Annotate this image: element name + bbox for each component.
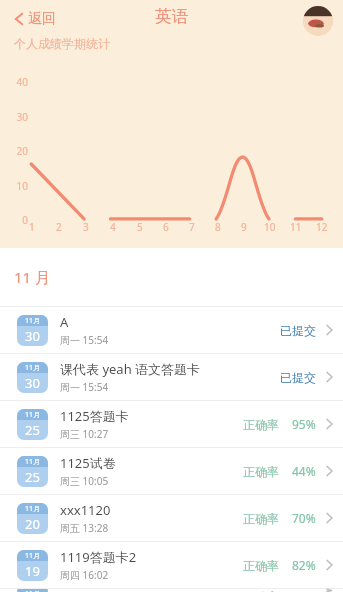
staticText: 20	[25, 515, 40, 533]
staticText: 30	[25, 327, 40, 345]
staticText: 正确率	[243, 417, 279, 432]
staticText: 6	[163, 220, 169, 234]
staticText: 英语	[155, 6, 189, 27]
staticText: 12	[316, 220, 328, 234]
staticText: 11月	[25, 457, 41, 467]
staticText: 25	[25, 468, 40, 486]
staticText: 4	[110, 220, 116, 234]
staticText: 19	[25, 562, 40, 580]
staticText: 正确率	[243, 558, 279, 573]
staticText: 11月	[25, 504, 41, 514]
staticText: 5	[137, 220, 143, 234]
staticText: xxx1120	[60, 501, 111, 519]
staticText: 周四 16:02	[60, 568, 109, 582]
staticText: 20	[10, 144, 28, 158]
staticText: 1125答题卡	[60, 407, 129, 425]
staticText: 82%	[292, 557, 316, 573]
staticText: 9	[241, 220, 247, 234]
staticText: 30	[10, 110, 28, 124]
button[interactable]: 11月	[0, 448, 343, 494]
staticText: 已提交	[280, 370, 316, 385]
staticText: 10	[264, 220, 276, 234]
button[interactable]: 返回	[10, 8, 60, 30]
staticText: 11 月	[14, 267, 51, 287]
staticText: 11月	[25, 551, 41, 561]
staticText: 11月	[25, 410, 41, 420]
staticText: 周五 13:28	[60, 521, 109, 535]
staticText: 25	[25, 421, 40, 439]
staticText: 1	[29, 220, 35, 234]
staticText: 正确率	[243, 464, 279, 479]
staticText: 1119答题卡2	[60, 548, 137, 566]
staticText: 0	[10, 213, 28, 227]
staticText: 2	[56, 220, 62, 234]
button[interactable]: 11月	[0, 307, 343, 353]
staticText: 40	[10, 75, 28, 89]
staticText: 周三 10:27	[60, 427, 109, 441]
button[interactable]: Profile	[303, 6, 333, 36]
staticText: 返回	[28, 10, 56, 28]
button[interactable]: 11月	[0, 401, 343, 447]
staticText: 11	[290, 220, 302, 234]
staticText: 11月	[25, 589, 41, 592]
button[interactable]: 11月	[0, 495, 343, 541]
staticText: 10	[10, 179, 28, 193]
staticText: 11月	[25, 316, 41, 326]
staticText: 个人成绩学期统计	[14, 36, 110, 51]
button[interactable]: 11月	[0, 542, 343, 588]
staticText: 11月	[25, 363, 41, 373]
staticText: 44%	[292, 463, 316, 479]
staticText: 70%	[292, 510, 316, 526]
staticText: 正确率	[243, 511, 279, 526]
staticText: 已提交	[280, 323, 316, 338]
staticText: 课代表 yeah 语文答题卡	[60, 360, 201, 378]
staticText: 95%	[292, 416, 316, 432]
staticText: 周三 10:05	[60, 474, 109, 488]
staticText: 周一 15:54	[60, 333, 109, 347]
button[interactable]: 11月	[0, 354, 343, 400]
staticText: 正确率	[243, 589, 279, 592]
button[interactable]: 11月	[0, 589, 343, 592]
staticText: 周一 15:54	[60, 380, 109, 394]
staticText: 1125试卷	[60, 454, 116, 472]
staticText: A	[60, 313, 69, 331]
staticText: 8	[215, 220, 221, 234]
staticText: 3	[83, 220, 89, 234]
staticText: 30	[25, 374, 40, 392]
staticText: 7	[189, 220, 195, 234]
